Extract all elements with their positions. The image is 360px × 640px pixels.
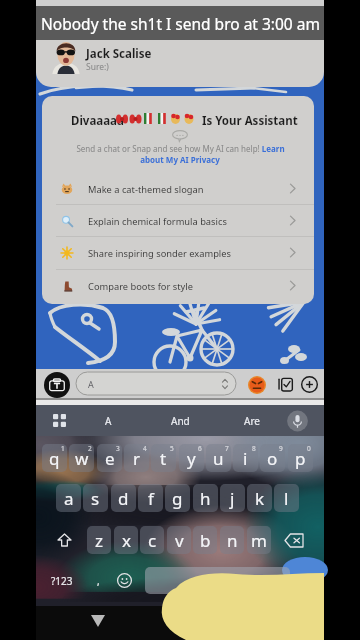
staticText: e xyxy=(105,447,115,470)
button[interactable]: Space xyxy=(145,567,290,594)
staticText: a xyxy=(64,487,74,510)
staticText: Jack Scalise xyxy=(86,46,152,62)
button[interactable]: k xyxy=(247,484,272,512)
staticText: Divaaaaa xyxy=(71,113,124,129)
button[interactable]: r xyxy=(124,444,149,472)
staticText: c xyxy=(148,529,157,552)
staticText: Make a cat-themed slogan xyxy=(88,183,204,196)
staticText: Compare boots for style xyxy=(88,280,193,293)
staticText: 0 xyxy=(307,444,311,453)
staticText: Are xyxy=(244,414,260,428)
staticText: about My AI Privacy xyxy=(140,154,220,165)
button[interactable]: Are xyxy=(216,405,288,436)
staticText: l xyxy=(284,487,289,510)
button[interactable]: Compare boots for style xyxy=(42,269,314,301)
staticText: u xyxy=(213,447,224,470)
staticText: b xyxy=(200,529,211,552)
button[interactable]: x xyxy=(114,526,138,554)
button[interactable]: A xyxy=(72,405,144,436)
button[interactable]: b xyxy=(193,526,217,554)
button[interactable]: Add xyxy=(301,376,318,393)
button[interactable]: h xyxy=(193,484,218,512)
button[interactable]: Shift xyxy=(42,526,87,554)
button[interactable]: v xyxy=(167,526,191,554)
staticText: i xyxy=(243,447,248,470)
staticText: 5 xyxy=(170,444,174,453)
staticText: r xyxy=(133,447,141,470)
staticText: d xyxy=(118,487,129,510)
staticText: Sure:) xyxy=(86,61,109,73)
staticText: 2 xyxy=(88,444,92,453)
button[interactable]: g xyxy=(165,484,190,512)
button[interactable]: f xyxy=(138,484,163,512)
button[interactable]: Share inspiring sonder examples xyxy=(42,236,314,268)
button[interactable]: Backspace xyxy=(273,526,315,554)
button[interactable]: c xyxy=(140,526,164,554)
staticText: s xyxy=(91,487,100,510)
staticText: j xyxy=(230,487,235,510)
staticText: Send a chat or Snap and see how My AI ca… xyxy=(76,143,285,154)
button[interactable]: e xyxy=(97,444,122,472)
staticText: 3 xyxy=(116,444,120,453)
staticText: ?123 xyxy=(51,574,73,588)
button[interactable] xyxy=(36,0,324,87)
button[interactable]: i xyxy=(233,444,258,472)
button[interactable]: Make a cat-themed slogan xyxy=(42,172,314,204)
staticText: 7 xyxy=(225,444,229,453)
button[interactable]: q xyxy=(42,444,67,472)
button[interactable]: Explain chemical formula basics xyxy=(42,204,314,236)
button[interactable]: s xyxy=(83,484,108,512)
staticText: o xyxy=(267,447,278,470)
staticText: p xyxy=(295,447,306,470)
staticText: A xyxy=(105,414,112,428)
button[interactable] xyxy=(76,372,236,395)
staticText: Nobody the sh1t I send bro at 3:00 am xyxy=(41,13,320,34)
staticText: v xyxy=(175,529,184,552)
staticText: w xyxy=(75,447,89,470)
staticText: m xyxy=(251,529,267,552)
button[interactable]: y xyxy=(179,444,204,472)
button[interactable]: t xyxy=(151,444,176,472)
button[interactable]: l xyxy=(274,484,299,512)
staticText: 1 xyxy=(61,444,65,453)
button[interactable]: Camera xyxy=(44,372,70,398)
staticText: Share inspiring sonder examples xyxy=(88,247,231,260)
button[interactable]: Emoji keyboard xyxy=(112,567,136,595)
button[interactable]: ?123 xyxy=(42,567,82,595)
staticText: Explain chemical formula basics xyxy=(88,215,227,228)
button[interactable]: a xyxy=(56,484,81,512)
button[interactable]: Stickers xyxy=(276,375,295,394)
staticText: , xyxy=(97,574,100,588)
staticText: g xyxy=(172,487,183,510)
button[interactable]: n xyxy=(220,526,244,554)
staticText: t xyxy=(160,447,167,470)
button[interactable]: z xyxy=(87,526,111,554)
button[interactable]: j xyxy=(220,484,245,512)
button[interactable]: d xyxy=(111,484,136,512)
staticText: h xyxy=(200,487,211,510)
button[interactable]: , xyxy=(86,567,110,595)
staticText: k xyxy=(255,487,265,510)
staticText: f xyxy=(148,487,154,510)
button[interactable]: p xyxy=(288,444,313,472)
staticText: z xyxy=(95,529,103,552)
button[interactable]: And xyxy=(144,405,216,436)
staticText: And xyxy=(171,414,190,428)
button[interactable]: w xyxy=(69,444,94,472)
staticText: x xyxy=(122,529,131,552)
staticText: 4 xyxy=(143,444,147,453)
staticText: A xyxy=(88,378,94,390)
button[interactable]: u xyxy=(206,444,231,472)
button[interactable]: m xyxy=(247,526,271,554)
staticText: n xyxy=(227,529,238,552)
staticText: 8 xyxy=(252,444,256,453)
button[interactable]: o xyxy=(260,444,285,472)
staticText: 6 xyxy=(198,444,202,453)
button[interactable]: Emoji xyxy=(248,376,266,394)
staticText: q xyxy=(49,447,60,470)
staticText: 9 xyxy=(279,444,283,453)
staticText: Nobody the sh1t I send bro at 3:00 am xyxy=(41,13,320,34)
staticText: Is Your Assistant xyxy=(202,113,298,129)
staticText: y xyxy=(187,447,196,470)
